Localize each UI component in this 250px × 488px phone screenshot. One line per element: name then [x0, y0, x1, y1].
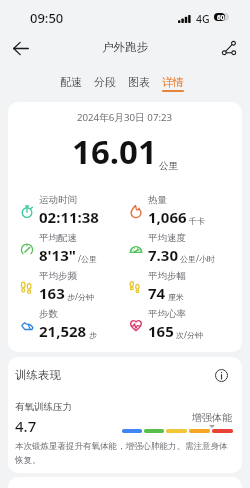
- staticText: 热量: [148, 194, 167, 206]
- staticText: 步/分钟: [67, 291, 94, 302]
- staticText: 增强体能: [192, 411, 232, 424]
- staticText: 户外跑步: [102, 40, 148, 54]
- staticText: 详情: [162, 75, 184, 89]
- staticText: 09:50: [30, 9, 64, 27]
- staticText: 训练表现: [15, 368, 61, 382]
- staticText: 1,066: [148, 207, 187, 227]
- staticText: 平均速度: [148, 232, 186, 244]
- staticText: 平均步频: [39, 270, 77, 282]
- staticText: 7.30: [148, 245, 178, 265]
- button[interactable]: 图表: [128, 75, 150, 92]
- staticText: 千卡: [189, 216, 205, 226]
- staticText: 次/分钟: [176, 329, 203, 340]
- staticText: 02:11:38: [39, 207, 99, 227]
- staticText: 公里: [159, 160, 178, 172]
- staticText: /公里: [78, 253, 97, 264]
- button[interactable]: Info: [213, 367, 229, 383]
- button[interactable]: 配速: [60, 75, 82, 92]
- staticText: 8'13": [39, 245, 76, 265]
- staticText: 平均心率: [148, 308, 186, 320]
- staticText: 有氧训练压力: [15, 401, 72, 413]
- staticText: 步数: [39, 308, 58, 320]
- staticText: 165: [148, 321, 174, 341]
- button[interactable]: Back: [5, 33, 35, 63]
- staticText: 4G: [196, 12, 210, 26]
- staticText: 21,528: [39, 321, 87, 341]
- button[interactable]: Share: [214, 33, 244, 63]
- staticText: 4.7: [15, 416, 37, 436]
- staticText: 厘米: [168, 292, 184, 302]
- staticText: 步: [89, 330, 97, 340]
- staticText: 分段: [94, 75, 116, 89]
- staticText: 平均步幅: [148, 270, 186, 282]
- staticText: 163: [39, 283, 65, 303]
- button[interactable]: 详情: [162, 75, 184, 92]
- staticText: 2024年6月30日 07:23: [77, 111, 173, 124]
- staticText: 运动时间: [39, 194, 77, 206]
- staticText: 配速: [60, 75, 82, 89]
- staticText: 公里/小时: [180, 253, 215, 264]
- button[interactable]: 分段: [94, 75, 116, 92]
- staticText: 图表: [128, 75, 150, 89]
- staticText: 60: [217, 13, 225, 21]
- staticText: 本次锻炼显著提升有氧体能，增强心肺能力。需注意身体恢复。: [15, 441, 234, 466]
- staticText: 74: [148, 283, 166, 303]
- staticText: 16.01: [72, 129, 157, 174]
- staticText: 平均配速: [39, 232, 77, 244]
